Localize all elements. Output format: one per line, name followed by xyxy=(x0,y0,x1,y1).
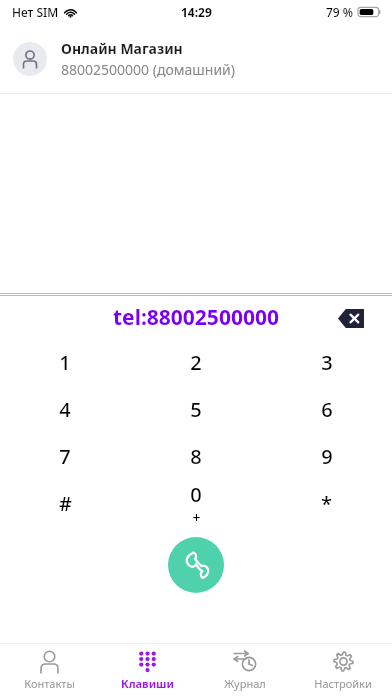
staticText: 2 xyxy=(190,349,202,376)
staticText: 88002500000 (домашний) xyxy=(61,60,235,79)
staticText: 1 xyxy=(59,349,71,376)
button[interactable]: * xyxy=(261,480,392,527)
staticText: 7 xyxy=(59,443,71,470)
staticText: 8 xyxy=(190,443,202,470)
button[interactable]: 0 xyxy=(130,480,261,527)
staticText: 9 xyxy=(321,443,333,470)
button[interactable]: 6 xyxy=(261,386,392,433)
button[interactable]: Call xyxy=(168,537,224,593)
staticText: 14:29 xyxy=(181,4,212,20)
button[interactable]: Журнал xyxy=(196,644,294,696)
button[interactable]: 5 xyxy=(130,386,261,433)
staticText: 5 xyxy=(190,396,202,423)
staticText: Журнал xyxy=(224,676,266,691)
button[interactable]: 7 xyxy=(0,433,130,480)
staticText: Настройки xyxy=(314,676,372,691)
button[interactable]: Настройки xyxy=(294,644,392,696)
button[interactable]: Клавиши xyxy=(98,644,196,696)
staticText: 4 xyxy=(59,396,71,423)
staticText: 79 % xyxy=(326,4,354,20)
button[interactable]: 4 xyxy=(0,386,130,433)
staticText: Клавиши xyxy=(121,676,174,691)
button[interactable]: 1 xyxy=(0,339,130,386)
staticText: tel:88002500000 xyxy=(113,303,279,332)
staticText: Нет SIM xyxy=(12,4,59,20)
button[interactable]: Контакты xyxy=(0,644,98,696)
button[interactable]: 2 xyxy=(130,339,261,386)
staticText: # xyxy=(59,490,72,517)
staticText: + xyxy=(192,508,201,527)
button[interactable]: Онлайн Магазин xyxy=(0,24,392,93)
staticText: 0 xyxy=(190,481,202,508)
staticText: Контакты xyxy=(24,676,75,691)
button[interactable]: # xyxy=(0,480,130,527)
staticText: 3 xyxy=(321,349,333,376)
button[interactable]: 8 xyxy=(130,433,261,480)
button[interactable]: Backspace xyxy=(334,301,368,335)
staticText: Онлайн Магазин xyxy=(61,39,183,58)
button[interactable]: 3 xyxy=(261,339,392,386)
staticText: 6 xyxy=(321,396,333,423)
button[interactable]: 9 xyxy=(261,433,392,480)
staticText: * xyxy=(321,490,332,517)
